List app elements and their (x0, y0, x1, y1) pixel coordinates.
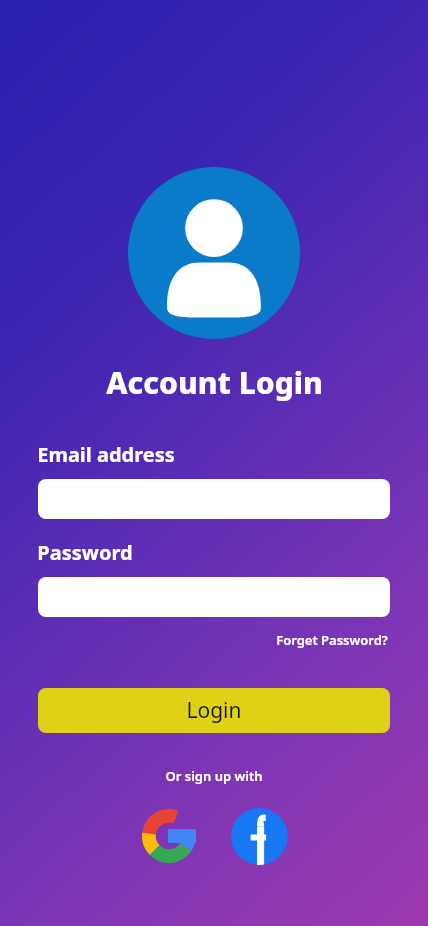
staticText: Password (37, 539, 133, 566)
staticText: Login (186, 696, 242, 725)
button[interactable]: Sign up with Google (140, 807, 198, 865)
button[interactable]: Sign up with Facebook (230, 807, 288, 865)
staticText: Forget Password? (276, 631, 388, 649)
button[interactable] (38, 577, 390, 617)
button[interactable] (38, 479, 390, 519)
staticText: Email address (37, 441, 175, 468)
staticText: Account Login (106, 362, 323, 403)
button[interactable]: Forget Password? (274, 629, 390, 651)
staticText: Or sign up with (165, 767, 263, 785)
button[interactable]: Login (38, 688, 390, 733)
